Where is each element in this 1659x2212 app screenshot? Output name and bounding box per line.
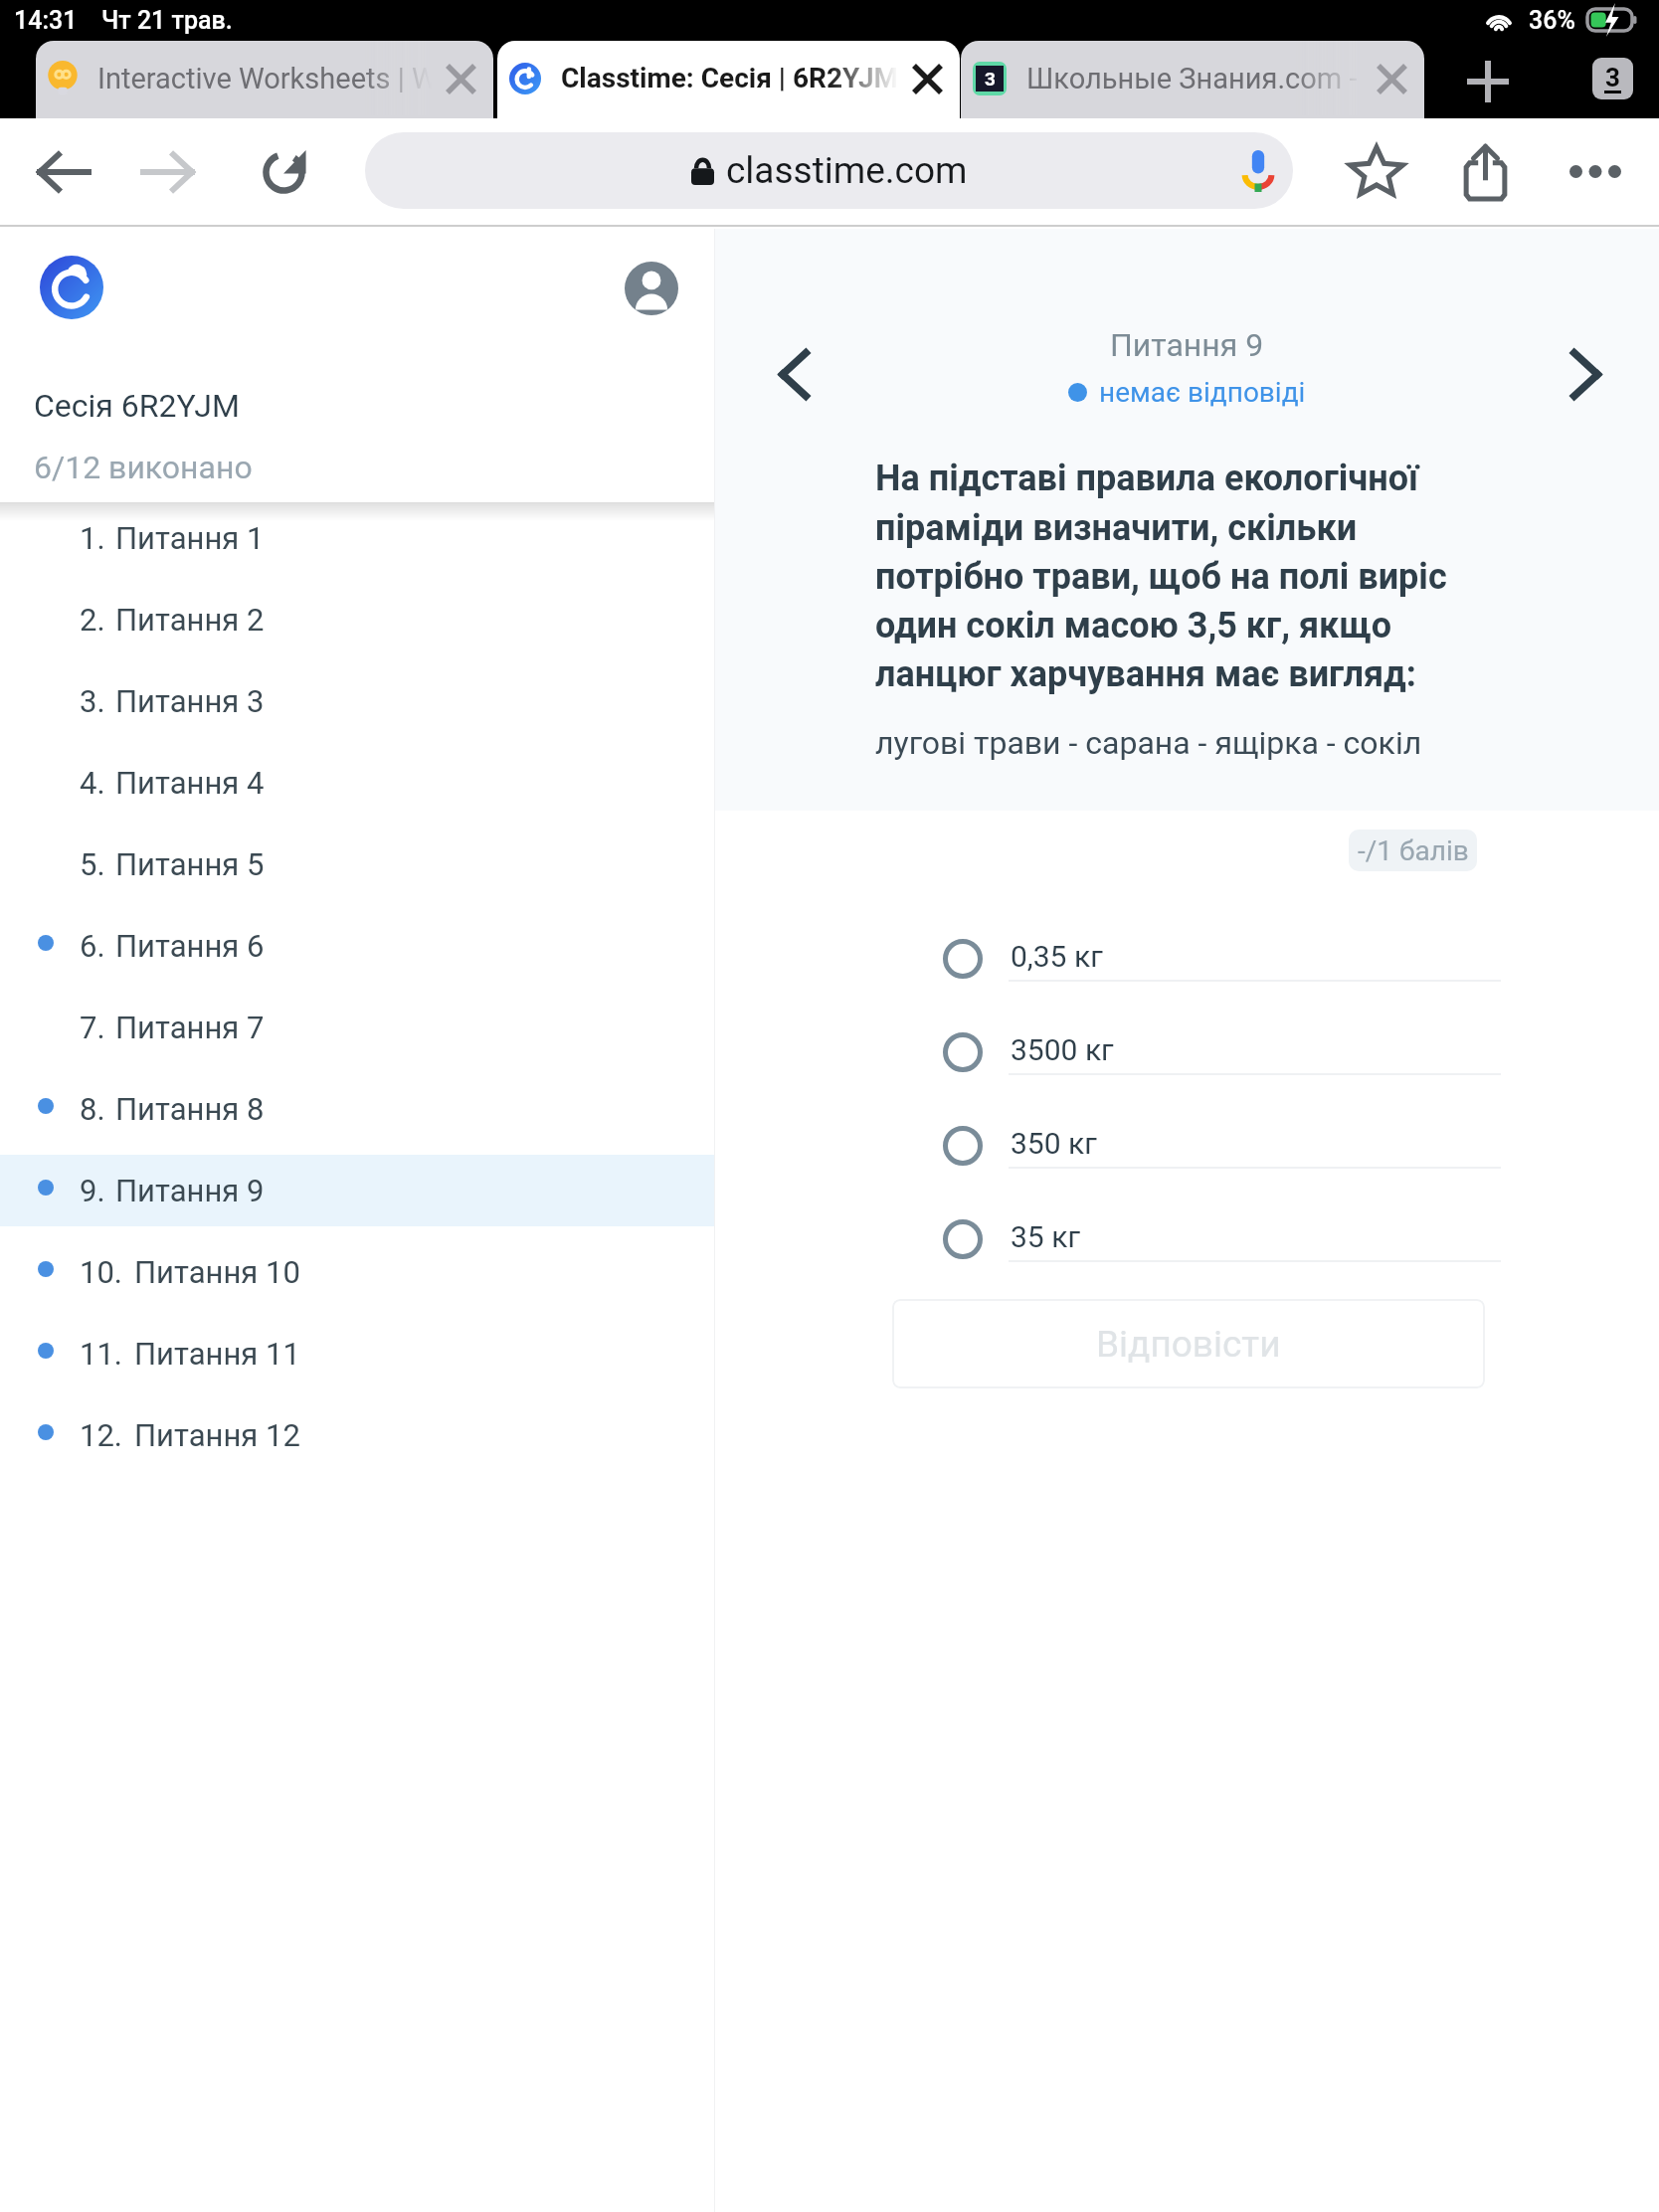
button[interactable]: Back — [32, 140, 95, 204]
button[interactable]: 10. — [0, 1236, 714, 1308]
staticText: 12. — [80, 1417, 123, 1453]
staticText: Питання 5 — [115, 846, 265, 882]
staticText: Питання 8 — [115, 1091, 265, 1127]
staticText: 7. — [80, 1010, 105, 1045]
staticText: Питання 1 — [115, 520, 265, 556]
staticText: Classtime: Сесія | 6R2YJM — [561, 62, 898, 94]
staticText: 5. — [80, 846, 105, 882]
staticText: 6/12 виконано — [34, 449, 253, 486]
staticText: 0,35 кг — [1011, 939, 1103, 974]
button[interactable]: Close tab — [902, 54, 952, 103]
staticText: 14:31 — [14, 6, 78, 35]
staticText: 10. — [80, 1254, 123, 1290]
button[interactable]: 35 кг — [715, 1209, 1659, 1303]
staticText: Відповісти — [1096, 1323, 1281, 1366]
staticText: 36% — [1529, 6, 1575, 35]
staticText: 2. — [80, 602, 105, 638]
staticText: 35 кг — [1011, 1219, 1080, 1254]
staticText: Питання 10 — [134, 1254, 300, 1290]
staticText: Питання 3 — [115, 683, 265, 719]
staticText: Питання 11 — [134, 1336, 300, 1372]
staticText: немає відповіді — [1099, 376, 1306, 409]
button[interactable]: New tab — [1454, 48, 1522, 115]
button[interactable]: 12. — [0, 1399, 714, 1471]
button[interactable]: Bookmark — [1345, 139, 1408, 203]
staticText: Сесія 6R2YJM — [34, 387, 240, 425]
button[interactable]: 11. — [0, 1318, 714, 1389]
button[interactable]: Next question — [1548, 336, 1624, 413]
button[interactable]: Close tab — [436, 54, 485, 103]
button[interactable]: Close tab — [1367, 54, 1416, 103]
staticText: На підставі правила екологічної піраміди… — [875, 458, 1472, 695]
button[interactable]: Classtime: Сесія | 6R2YJM — [497, 41, 960, 118]
staticText: Чт 21 трав. — [101, 6, 233, 35]
button[interactable]: 3500 кг — [715, 1022, 1659, 1116]
staticText: 3 — [985, 68, 996, 90]
button[interactable]: Previous question — [756, 336, 832, 413]
button[interactable]: Share — [1453, 139, 1517, 203]
button[interactable]: 3 — [961, 41, 1424, 118]
staticText: Interactive Worksheets | W — [97, 62, 432, 95]
staticText: Питання 4 — [115, 765, 265, 801]
button[interactable]: 4. — [0, 747, 714, 819]
staticText: Питання 12 — [134, 1417, 300, 1453]
staticText: Школьные Знания.com - — [1026, 62, 1363, 95]
button[interactable]: More options — [1564, 139, 1627, 203]
staticText: Питання 9 — [115, 1173, 265, 1208]
staticText: 4. — [80, 765, 105, 801]
button[interactable]: 0,35 кг — [715, 929, 1659, 1022]
staticText: 11. — [80, 1336, 123, 1372]
staticText: 1. — [80, 520, 105, 556]
staticText: 9. — [80, 1173, 105, 1208]
staticText: Питання 2 — [115, 602, 265, 638]
button[interactable]: Interactive Worksheets | W — [36, 41, 493, 118]
button[interactable]: 7. — [0, 992, 714, 1063]
staticText: -/1 балів — [1358, 834, 1469, 867]
button[interactable]: classtime.com — [365, 132, 1293, 209]
button[interactable]: 350 кг — [715, 1116, 1659, 1209]
button[interactable]: Reload — [252, 140, 315, 204]
button[interactable]: Show tabs — [1592, 58, 1633, 99]
button[interactable]: 9. — [0, 1155, 714, 1226]
button[interactable]: Voice search — [1230, 143, 1286, 199]
staticText: 3500 кг — [1011, 1032, 1114, 1067]
button[interactable]: Account — [625, 262, 678, 315]
staticText: 3. — [80, 683, 105, 719]
staticText: Питання 6 — [115, 928, 265, 964]
button[interactable]: 6. — [0, 910, 714, 982]
button[interactable]: Відповісти — [892, 1299, 1485, 1388]
staticText: 6. — [80, 928, 105, 964]
staticText: Питання 9 — [1110, 326, 1264, 364]
button[interactable]: 8. — [0, 1073, 714, 1145]
staticText: лугові трави - сарана - ящірка - сокіл — [875, 724, 1422, 762]
button[interactable]: 5. — [0, 829, 714, 900]
button[interactable]: 3. — [0, 665, 714, 737]
staticText: 350 кг — [1011, 1126, 1097, 1161]
staticText: 3 — [1605, 63, 1620, 92]
staticText: 8. — [80, 1091, 105, 1127]
staticText: classtime.com — [726, 149, 968, 192]
button[interactable]: 2. — [0, 584, 714, 655]
button[interactable]: Classtime home — [40, 256, 103, 319]
button[interactable]: 1. — [0, 502, 714, 574]
button[interactable]: Forward — [136, 140, 200, 204]
staticText: Питання 7 — [115, 1010, 265, 1045]
